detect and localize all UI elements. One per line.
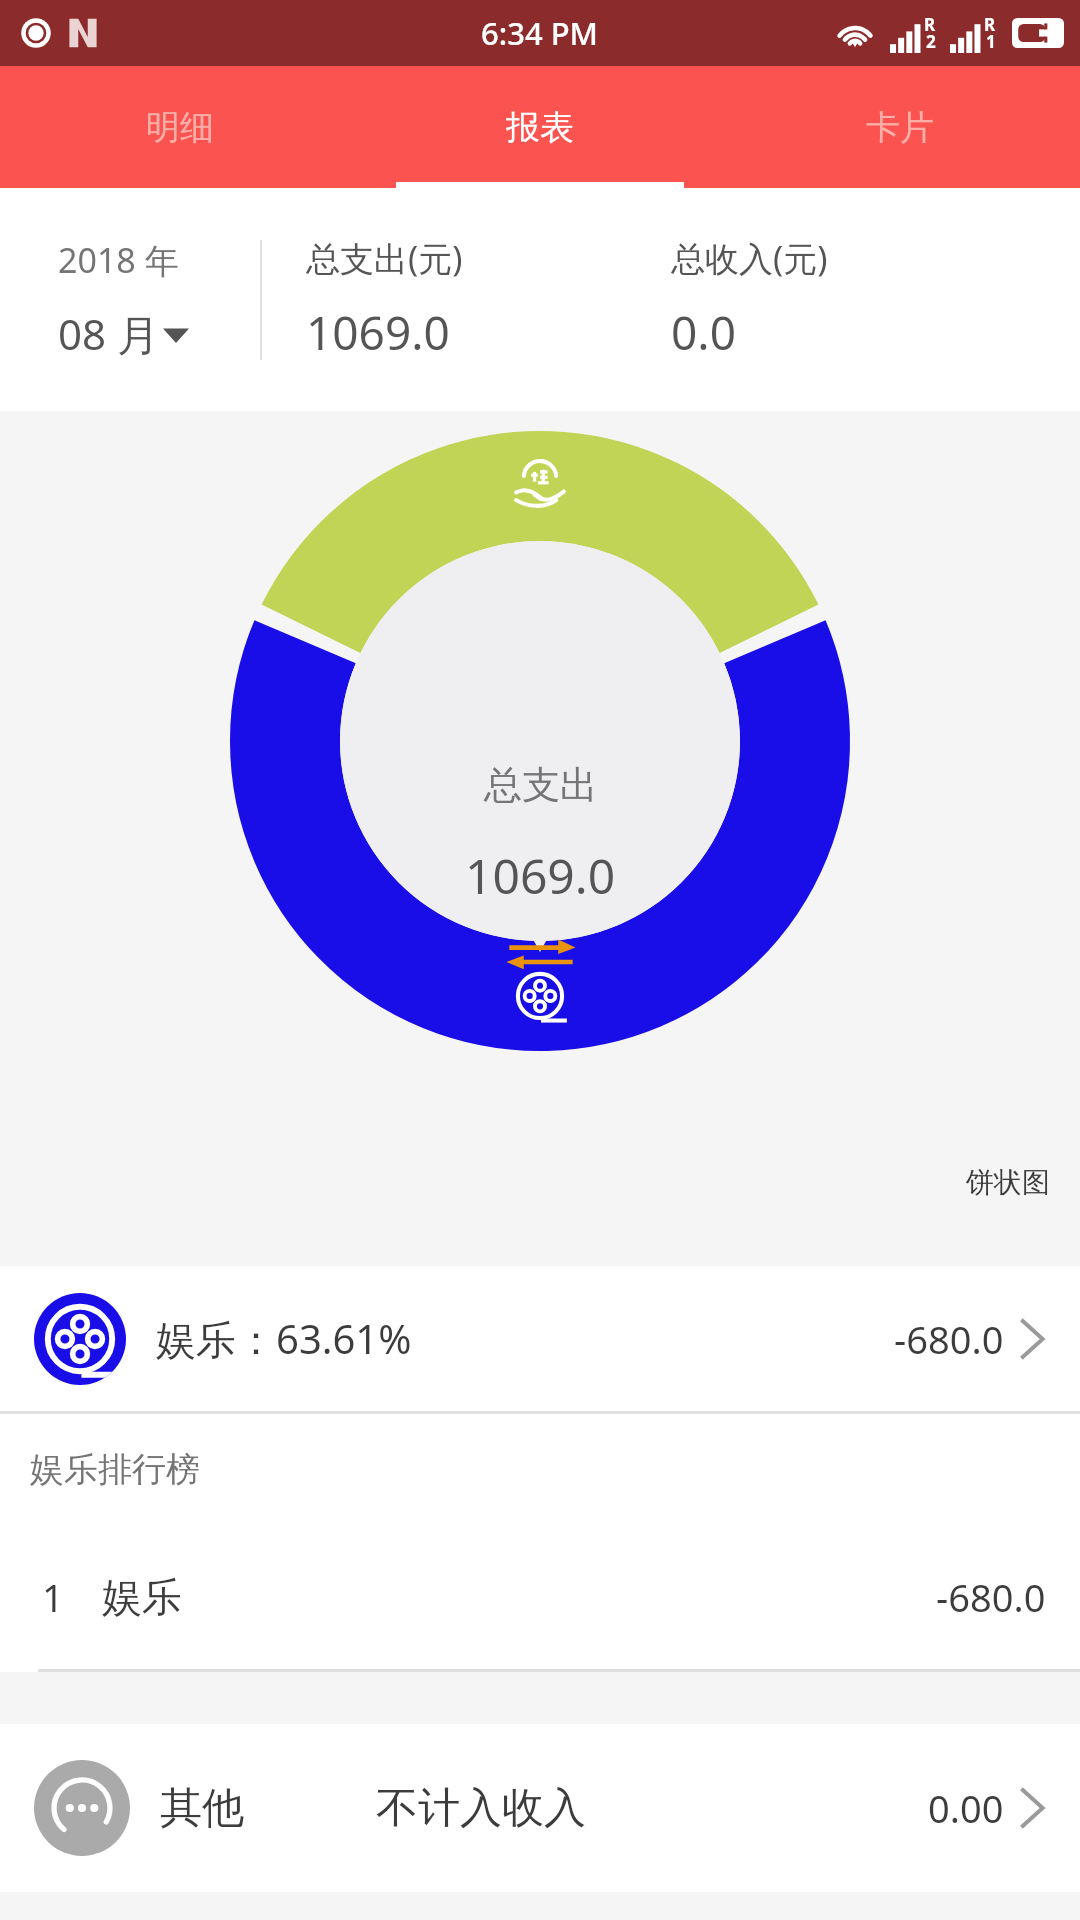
- staticText: 2: [926, 30, 936, 53]
- staticText: 2018 年: [58, 237, 179, 283]
- staticText: 总支出: [484, 761, 598, 809]
- staticText: 08 月: [58, 305, 159, 362]
- button[interactable]: 娱乐：63.61%: [0, 1266, 1080, 1411]
- staticText: 1069.0: [465, 843, 616, 908]
- button[interactable]: 2018 年: [0, 188, 260, 411]
- staticText: 娱乐：63.61%: [156, 1311, 412, 1366]
- button[interactable]: 明细: [0, 66, 360, 188]
- staticText: 报表: [506, 106, 574, 149]
- staticText: 娱乐: [102, 1572, 182, 1622]
- staticText: 0.0: [671, 301, 736, 364]
- staticText: 总收入(元): [671, 235, 828, 281]
- staticText: R: [924, 13, 936, 36]
- staticText: 6:34 PM: [481, 12, 599, 54]
- button[interactable]: 1: [0, 1524, 1080, 1669]
- staticText: 1: [986, 30, 996, 53]
- staticText: 1: [42, 1571, 64, 1623]
- button[interactable]: 报表: [360, 66, 720, 188]
- button[interactable]: 其他: [0, 1724, 1080, 1892]
- staticText: 不计入收入: [376, 1782, 586, 1835]
- staticText: R: [984, 13, 996, 36]
- staticText: -680.0: [936, 1571, 1046, 1623]
- staticText: -680.0: [894, 1313, 1004, 1365]
- staticText: 0.00: [928, 1782, 1004, 1834]
- button[interactable]: 卡片: [720, 66, 1080, 188]
- staticText: 饼状图: [966, 1165, 1050, 1200]
- staticText: 明细: [146, 106, 214, 149]
- staticText: 总支出(元): [306, 235, 463, 281]
- staticText: 1069.0: [306, 301, 450, 364]
- button[interactable]: 切换收支: [505, 934, 577, 974]
- staticText: 卡片: [866, 106, 934, 149]
- staticText: 娱乐排行榜: [30, 1448, 200, 1491]
- staticText: 其他: [160, 1782, 244, 1835]
